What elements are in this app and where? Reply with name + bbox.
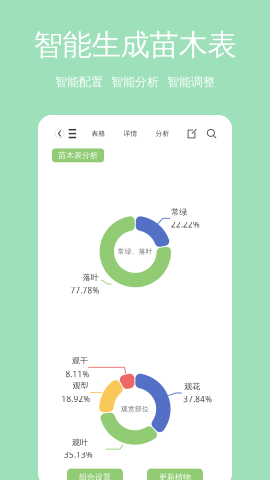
button[interactable]: Back bbox=[52, 125, 66, 141]
staticText: 常绿、落叶 bbox=[118, 247, 153, 256]
staticText: 智能配置 智能分析 智能调整 bbox=[55, 75, 215, 89]
staticText: 8.11% bbox=[65, 369, 89, 379]
button[interactable]: 详情 bbox=[123, 129, 137, 138]
button[interactable]: Compose bbox=[185, 127, 197, 139]
staticText: 观干 bbox=[72, 356, 88, 366]
button[interactable]: Search bbox=[205, 127, 217, 139]
staticText: 落叶 bbox=[83, 273, 99, 282]
staticText: 观赏部位 bbox=[121, 405, 149, 413]
staticText: 18.92% bbox=[61, 393, 90, 404]
staticText: 组合设置 bbox=[79, 472, 111, 480]
staticText: 常绿 bbox=[171, 207, 187, 217]
staticText: 77.78% bbox=[71, 285, 100, 296]
staticText: 智能生成苗木表 bbox=[33, 27, 236, 63]
staticText: 22.22% bbox=[171, 219, 200, 230]
button[interactable]: 表格 bbox=[91, 129, 105, 138]
staticText: 苗木表分析 bbox=[58, 150, 98, 160]
staticText: 35.13% bbox=[64, 449, 93, 460]
staticText: 表格 bbox=[91, 129, 105, 138]
button[interactable]: 组合设置 bbox=[67, 469, 123, 480]
staticText: 观花 bbox=[184, 382, 200, 391]
button[interactable]: 更新植物 bbox=[147, 469, 203, 480]
button[interactable]: Menu bbox=[66, 125, 79, 141]
staticText: 37.84% bbox=[183, 394, 212, 404]
staticText: 更新植物 bbox=[159, 472, 191, 480]
staticText: 分析 bbox=[155, 129, 169, 138]
button[interactable]: 分析 bbox=[155, 129, 169, 138]
staticText: 观型 bbox=[72, 381, 88, 391]
staticText: 观叶 bbox=[72, 438, 88, 447]
staticText: 详情 bbox=[123, 129, 137, 138]
button[interactable]: 苗木表分析 bbox=[52, 148, 104, 162]
